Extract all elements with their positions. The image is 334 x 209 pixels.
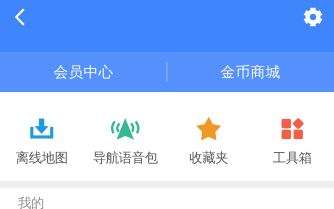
button[interactable]: 会员中心 — [0, 52, 167, 92]
button[interactable]: 离线地图 — [0, 92, 83, 181]
button[interactable]: Settings — [292, 0, 334, 34]
staticText: 导航语音包 — [93, 150, 158, 166]
staticText: 会员中心 — [53, 63, 113, 81]
staticText: 金币商城 — [220, 63, 280, 81]
button[interactable]: Back — [0, 0, 40, 34]
staticText: 我的 — [18, 195, 44, 209]
button[interactable]: 收藏夹 — [167, 92, 250, 181]
button[interactable]: 导航语音包 — [83, 92, 167, 181]
staticText: 工具箱 — [273, 150, 312, 166]
staticText: 收藏夹 — [189, 150, 228, 166]
staticText: 离线地图 — [16, 150, 68, 166]
button[interactable]: 金币商城 — [167, 52, 334, 92]
button[interactable]: 工具箱 — [250, 92, 334, 181]
